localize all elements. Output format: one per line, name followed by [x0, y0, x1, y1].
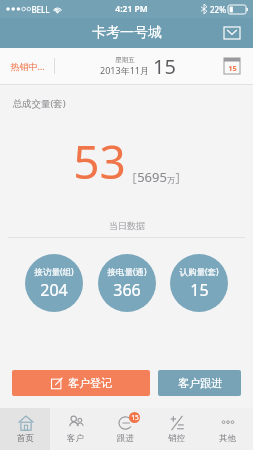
- button[interactable]: 15: [100, 408, 151, 450]
- button[interactable]: Messages: [219, 20, 245, 46]
- button[interactable]: 销控: [151, 408, 202, 450]
- staticText: 跟进: [117, 433, 134, 444]
- staticText: 客户: [67, 433, 84, 444]
- button[interactable]: 接访量(组): [25, 254, 83, 312]
- button[interactable]: Calendar: [221, 55, 243, 77]
- staticText: 15: [131, 413, 139, 422]
- button[interactable]: 客户跟进: [158, 370, 241, 396]
- staticText: 销控: [168, 433, 185, 444]
- staticText: 其他: [219, 433, 236, 444]
- staticText: 首页: [17, 433, 34, 444]
- button[interactable]: 其他: [202, 408, 253, 450]
- staticText: 客户跟进: [178, 376, 222, 390]
- staticText: 15: [190, 279, 209, 301]
- staticText: 53: [73, 130, 126, 193]
- staticText: BELL: [31, 4, 50, 15]
- staticText: 客户登记: [68, 376, 112, 390]
- button[interactable]: 认购量(套): [170, 254, 228, 312]
- staticText: 认购量(套): [179, 266, 219, 278]
- button[interactable]: 客户登记: [12, 370, 150, 396]
- staticText: 接电量(通): [107, 266, 147, 278]
- staticText: 204: [40, 279, 68, 301]
- staticText: 星期五: [115, 56, 135, 64]
- button[interactable]: 接电量(通): [98, 254, 156, 312]
- staticText: 4:21 PM: [115, 3, 148, 15]
- staticText: 总成交量(套): [12, 97, 66, 110]
- staticText: 卡考一号城: [92, 24, 162, 42]
- staticText: ]: [175, 168, 180, 186]
- staticText: 15: [228, 63, 237, 73]
- staticText: [: [132, 168, 137, 186]
- staticText: 22%: [210, 4, 226, 15]
- staticText: 15: [153, 53, 176, 80]
- staticText: 热销中…: [10, 60, 45, 72]
- button[interactable]: 客户: [50, 408, 100, 450]
- staticText: 366: [113, 279, 141, 301]
- staticText: 万: [167, 175, 175, 185]
- staticText: 5695: [137, 168, 167, 186]
- staticText: 接访量(组): [34, 266, 74, 278]
- button[interactable]: 首页: [0, 408, 50, 450]
- staticText: 2013年11月: [100, 64, 149, 76]
- staticText: 当日数据: [109, 220, 145, 231]
